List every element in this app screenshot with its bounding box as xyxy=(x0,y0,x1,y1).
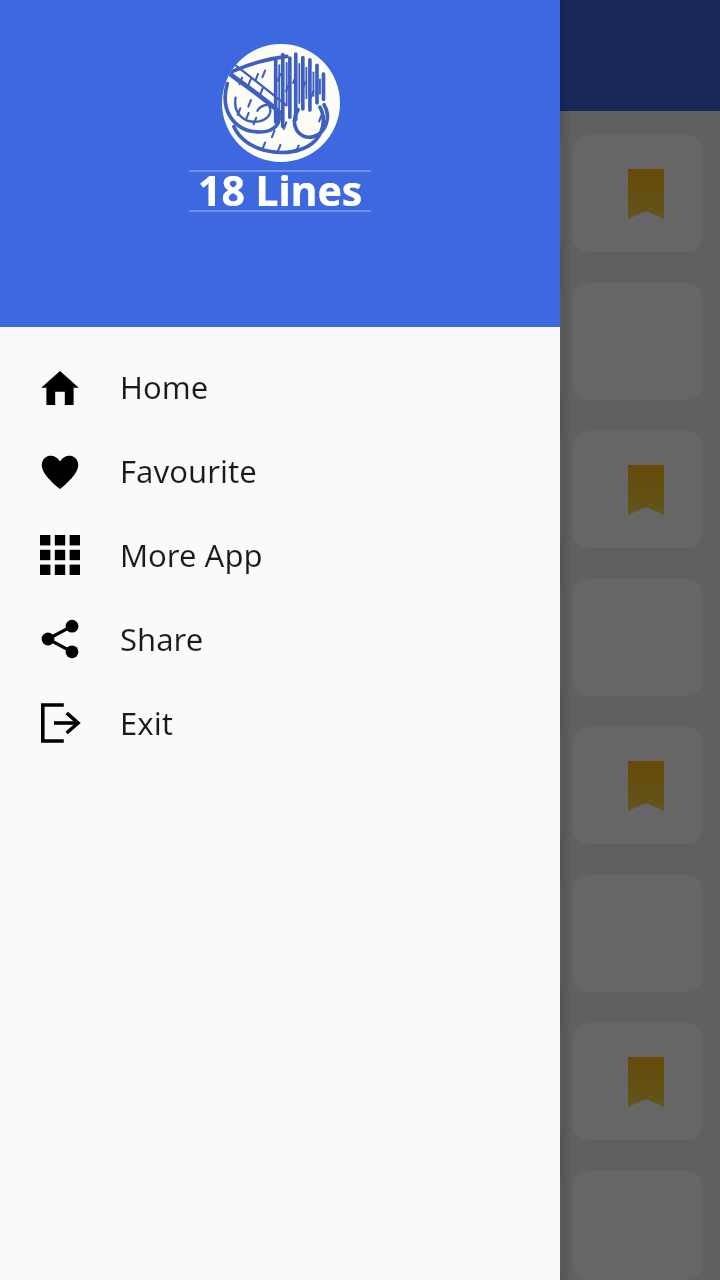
button[interactable]: Favourite xyxy=(0,429,560,513)
button[interactable]: Bookmarked page xyxy=(295,135,424,252)
button[interactable]: Page xyxy=(295,283,424,400)
button[interactable]: Share xyxy=(0,597,560,681)
staticText: Favourite xyxy=(120,450,257,492)
button[interactable]: Bookmarked page xyxy=(573,727,702,844)
staticText: 18 Lines xyxy=(198,162,363,218)
button[interactable]: Bookmarked page xyxy=(434,283,563,400)
button[interactable]: Bookmarked page xyxy=(156,283,285,400)
button[interactable]: Exit xyxy=(0,681,560,765)
button[interactable]: More App xyxy=(0,513,560,597)
button[interactable]: Page xyxy=(18,283,146,400)
button[interactable]: Bookmarked page xyxy=(434,1171,563,1280)
button[interactable]: Page xyxy=(434,1023,563,1140)
button[interactable]: Bookmarked page xyxy=(573,135,702,252)
button[interactable]: Page xyxy=(434,727,563,844)
staticText: Exit xyxy=(120,702,173,744)
button[interactable]: Bookmarked page xyxy=(156,579,285,696)
button[interactable]: Bookmarked page xyxy=(573,431,702,548)
button[interactable]: Page xyxy=(156,135,285,252)
button[interactable]: Page xyxy=(156,727,285,844)
staticText: More App xyxy=(120,534,263,576)
button[interactable]: Bookmarked page xyxy=(573,1023,702,1140)
button[interactable]: Bookmarked page xyxy=(18,727,146,844)
staticText: Share xyxy=(120,618,204,660)
button[interactable]: Page xyxy=(156,431,285,548)
button[interactable]: Page xyxy=(18,579,146,696)
button[interactable]: Page xyxy=(434,135,563,252)
button[interactable]: Bookmarked page xyxy=(434,579,563,696)
button[interactable]: Home xyxy=(0,345,560,429)
button[interactable]: Bookmarked page xyxy=(18,431,146,548)
staticText: Home xyxy=(120,366,209,408)
button[interactable]: Bookmarked page xyxy=(434,875,563,992)
button[interactable]: Page xyxy=(434,431,563,548)
